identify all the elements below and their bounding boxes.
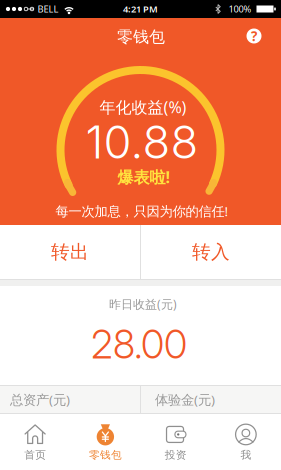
staticText: 4:21 PM [123, 3, 158, 15]
staticText: 每一次加息，只因为你的信任! [55, 202, 228, 220]
staticText: 转入 [192, 240, 230, 263]
button[interactable]: 转入 [141, 225, 281, 279]
staticText: 28.00 [91, 321, 187, 368]
staticText: 年化收益(%) [99, 96, 186, 118]
staticText: 零钱包 [117, 27, 165, 47]
staticText: 100% [228, 3, 251, 15]
staticText: 昨日收益(元) [109, 296, 177, 312]
button[interactable]: 体验金(元) [141, 386, 281, 413]
staticText: 体验金(元) [155, 391, 215, 408]
staticText: 投资 [165, 448, 187, 461]
staticText: 转出 [51, 240, 89, 263]
staticText: 首页 [24, 448, 46, 461]
staticText: 总资产(元) [10, 391, 70, 408]
button[interactable]: 首页 [0, 414, 70, 470]
button[interactable]: 帮助 [246, 28, 262, 44]
staticText: 我 [240, 448, 251, 461]
button[interactable]: 投资 [140, 414, 211, 470]
staticText: BELL [37, 3, 58, 15]
staticText: 10.88 [85, 115, 198, 169]
staticText: 零钱包 [89, 448, 122, 461]
button[interactable]: 我 [211, 414, 281, 470]
staticText: ? [251, 27, 257, 45]
staticText: 爆表啦! [117, 166, 170, 188]
button[interactable]: 零钱包 [70, 414, 140, 470]
button[interactable]: 转出 [0, 225, 140, 279]
button[interactable]: 总资产(元) [0, 386, 140, 413]
